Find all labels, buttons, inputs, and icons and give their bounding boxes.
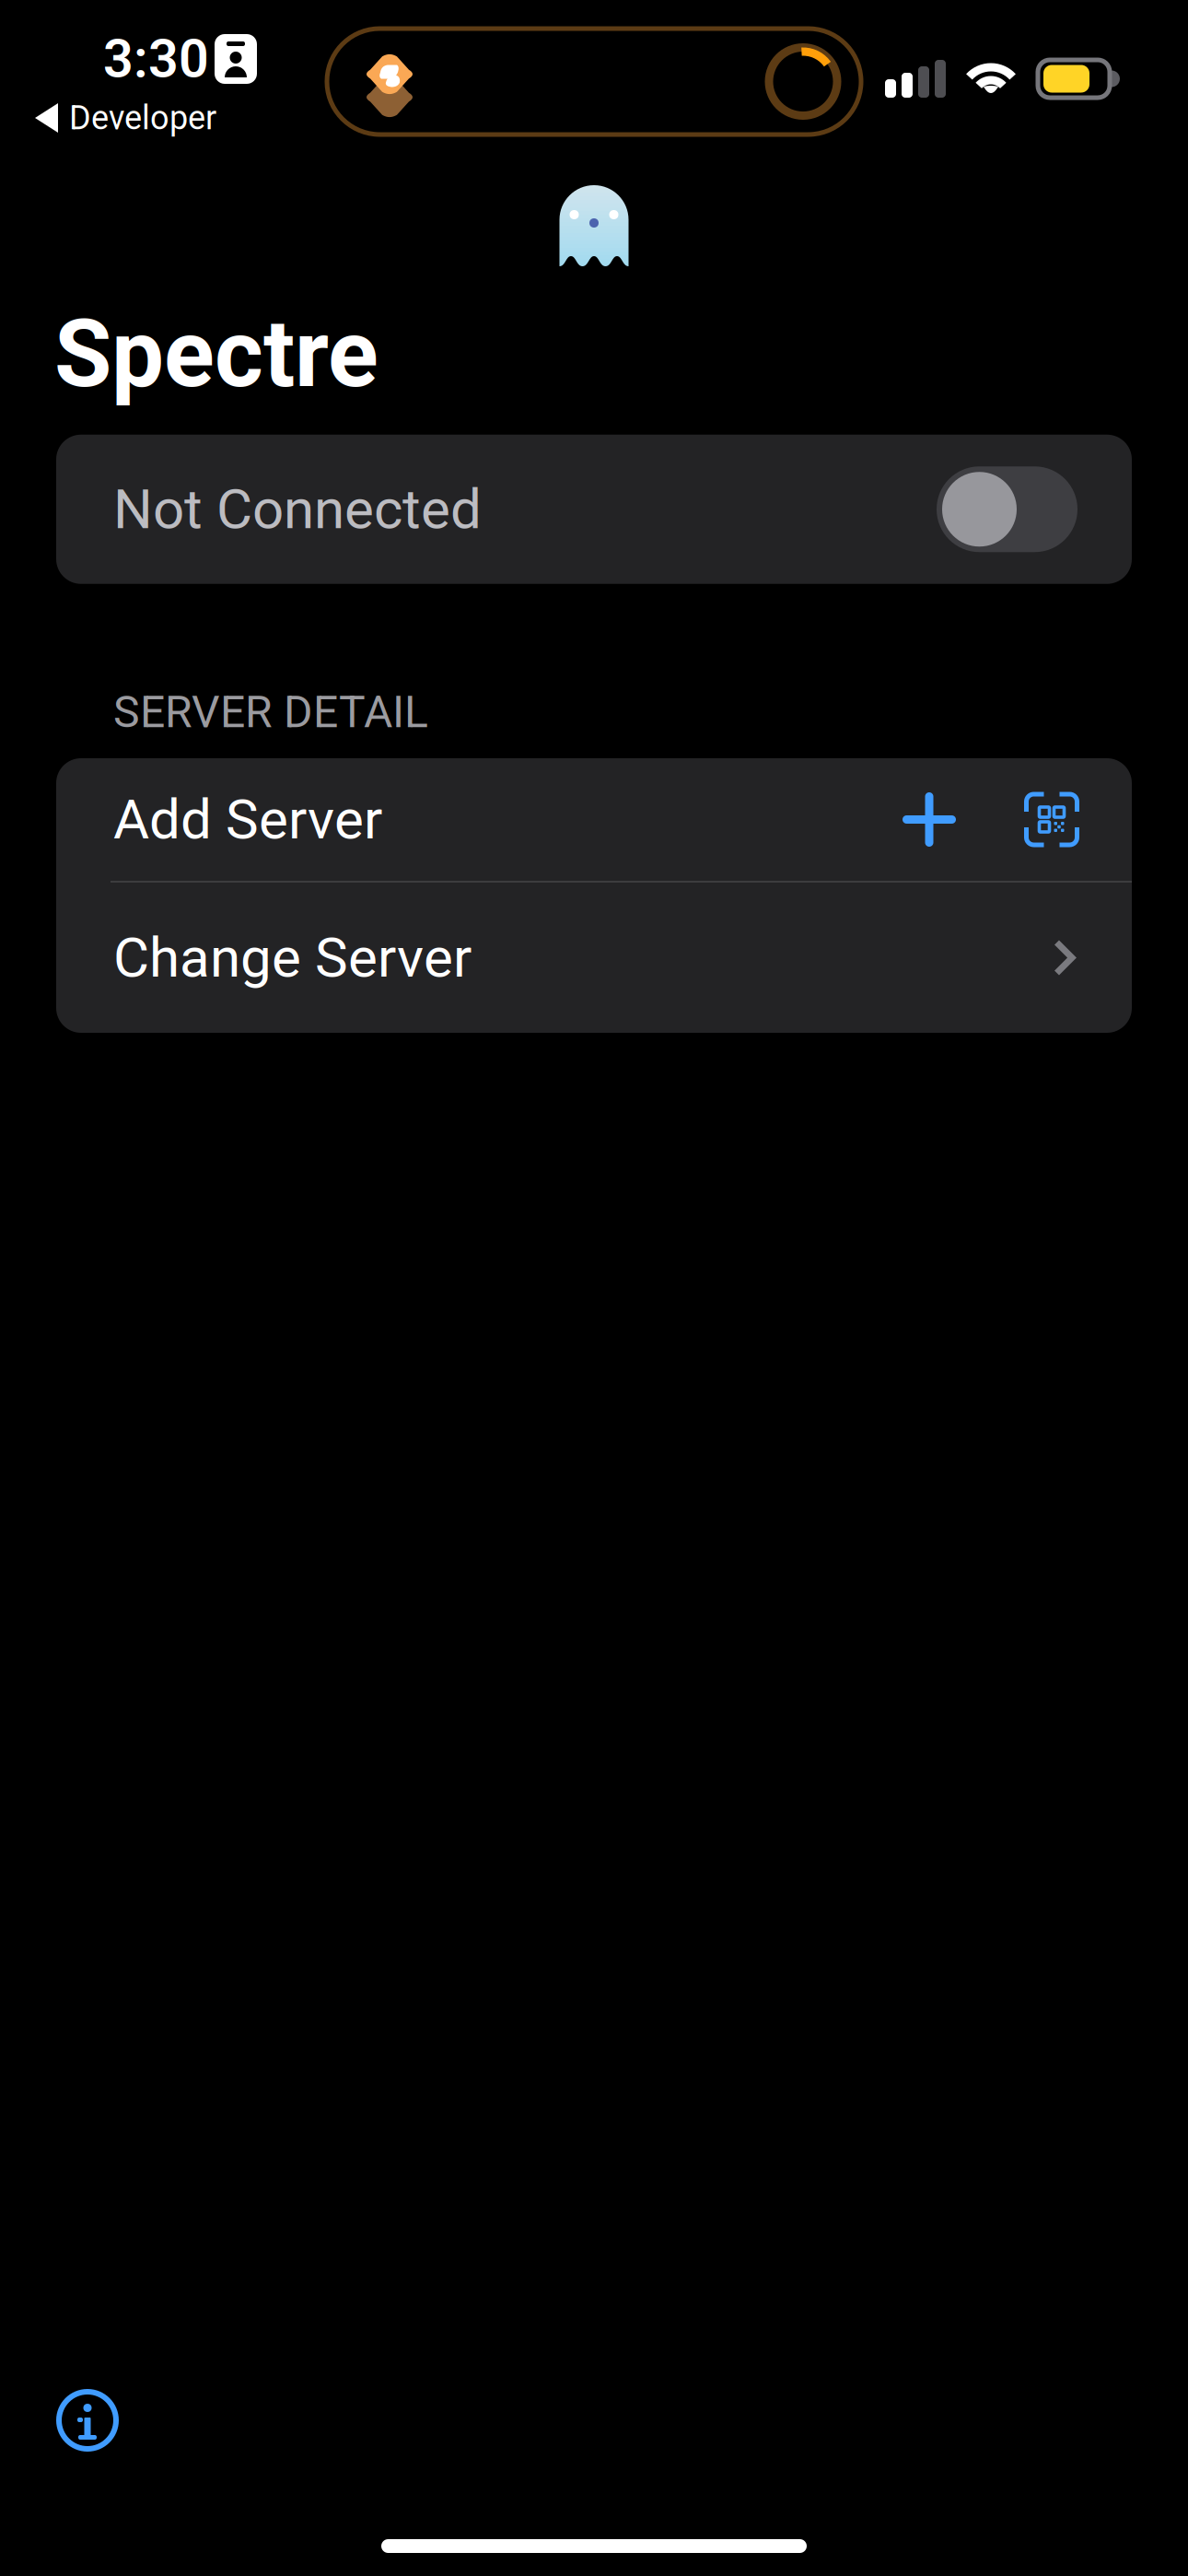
staticText: Not Connected bbox=[113, 477, 482, 542]
button[interactable]: Change Server bbox=[56, 883, 1132, 1033]
staticText: Add Server bbox=[113, 787, 382, 852]
staticText: 3:30 bbox=[103, 28, 209, 90]
button[interactable]: About bbox=[58, 2391, 117, 2450]
staticText: Developer bbox=[69, 98, 216, 137]
button[interactable]: Add Server bbox=[56, 758, 1132, 881]
button[interactable]: Not Connected bbox=[56, 435, 1132, 584]
staticText: Change Server bbox=[113, 925, 472, 990]
staticText: Spectre bbox=[54, 299, 379, 409]
staticText: SERVER DETAIL bbox=[113, 686, 428, 738]
